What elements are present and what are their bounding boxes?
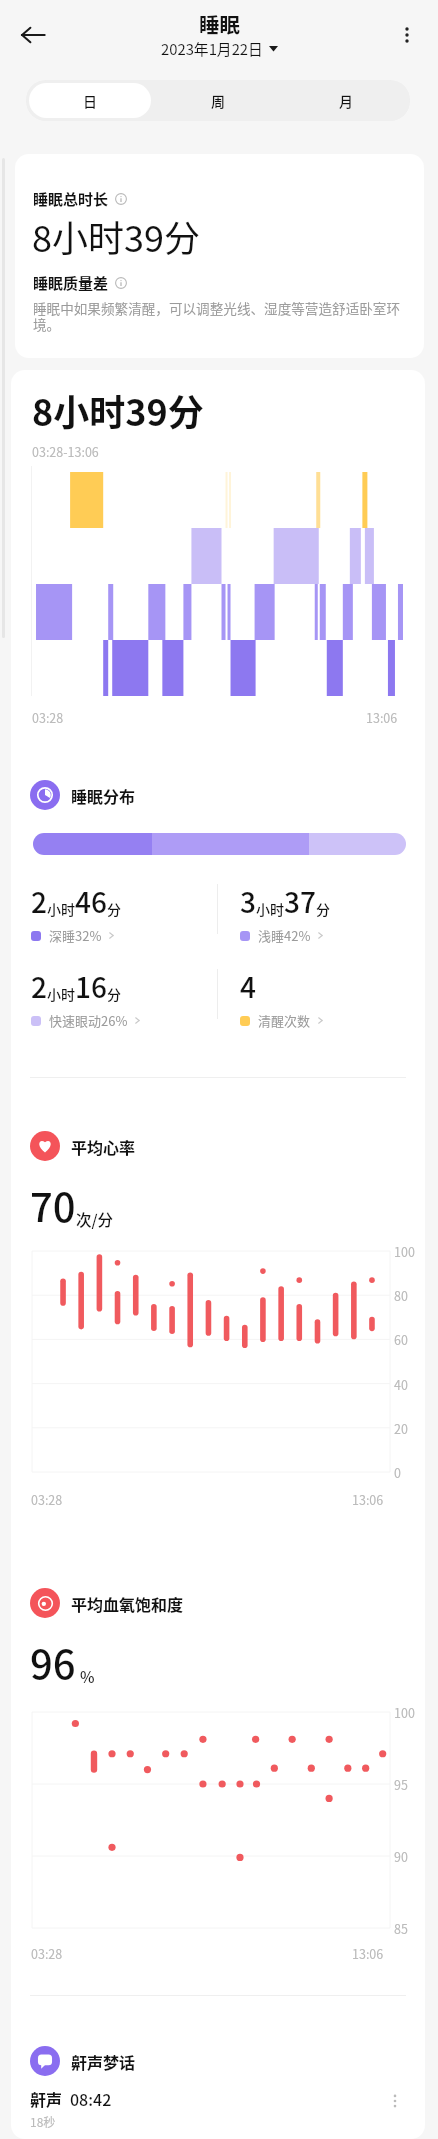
staticText: 20 [394, 1419, 408, 1437]
staticText: 8小时39分 [32, 210, 200, 262]
staticText: 80 [394, 1286, 408, 1304]
button[interactable]: 4 [240, 966, 325, 1030]
staticText: 13:06 [366, 708, 398, 726]
staticText: 小时 [47, 899, 75, 919]
staticText: 60 [394, 1330, 408, 1348]
button[interactable]: 2 [31, 966, 142, 1030]
staticText: 4 [240, 966, 256, 1007]
button[interactable]: 平均心率 [30, 1131, 136, 1161]
button[interactable]: 睡眠分布 [30, 780, 136, 810]
staticText: 37 [284, 881, 316, 922]
staticText: 分 [107, 899, 121, 919]
staticText: 16 [75, 966, 107, 1007]
staticText: 18秒 [30, 2113, 56, 2130]
staticText: 3 [240, 881, 256, 922]
staticText: 03:28 [32, 708, 64, 726]
staticText: 03:28 [31, 1490, 63, 1508]
staticText: 96 [30, 1633, 76, 1691]
staticText: 95 [394, 1775, 408, 1793]
staticText: 深睡32% [49, 926, 102, 945]
staticText: 周 [211, 91, 225, 111]
staticText: 平均血氧饱和度 [71, 1592, 184, 1615]
button[interactable]: More options [386, 14, 428, 56]
staticText: 70 [30, 1176, 76, 1234]
staticText: 90 [394, 1847, 408, 1865]
staticText: 快速眼动26% [49, 1011, 128, 1030]
staticText: % [80, 1665, 95, 1687]
staticText: 月 [339, 91, 353, 111]
staticText: 日 [83, 91, 97, 111]
staticText: 8小时39分 [32, 384, 204, 436]
staticText: 浅睡42% [258, 926, 311, 945]
button[interactable]: 鼾声 [11, 2087, 425, 2139]
staticText: 分 [316, 899, 330, 919]
staticText: 100 [394, 1703, 415, 1721]
staticText: 40 [394, 1375, 408, 1393]
staticText: 0 [394, 1463, 401, 1481]
staticText: 小时 [256, 899, 284, 919]
staticText: 睡眠分布 [71, 784, 136, 807]
staticText: 100 [394, 1242, 415, 1260]
staticText: 睡眠 [199, 9, 240, 39]
button[interactable]: 3 [240, 881, 330, 945]
staticText: 46 [75, 881, 107, 922]
staticText: 08:42 [70, 2087, 112, 2110]
staticText: 鼾声 [30, 2087, 63, 2110]
staticText: 85 [394, 1919, 408, 1937]
button[interactable]: 鼾声梦话 [30, 2046, 136, 2076]
staticText: 分 [107, 984, 121, 1004]
staticText: 13:06 [352, 1944, 384, 1962]
staticText: 03:28-13:06 [32, 442, 99, 460]
staticText: 2023年1月22日 [161, 38, 263, 59]
button[interactable]: 周 [157, 83, 279, 118]
staticText: 睡眠中如果频繁清醒，可以调整光线、湿度等营造舒适卧室环境。 [33, 298, 405, 334]
button[interactable]: Back [10, 12, 56, 58]
staticText: 鼾声梦话 [71, 2050, 136, 2073]
button[interactable]: 平均血氧饱和度 [30, 1588, 184, 1618]
staticText: 03:28 [31, 1944, 63, 1962]
staticText: 小时 [47, 984, 75, 1004]
staticText: 2 [31, 881, 47, 922]
button[interactable]: 月 [285, 83, 407, 118]
staticText: 睡眠质量差 [33, 272, 109, 294]
button[interactable]: 2 [31, 881, 121, 945]
staticText: 次/分 [76, 1208, 114, 1230]
button[interactable]: 日 [29, 83, 151, 118]
staticText: 2 [31, 966, 47, 1007]
button[interactable]: 2023年1月22日 [161, 38, 278, 59]
staticText: 平均心率 [71, 1135, 136, 1158]
staticText: 清醒次数 [258, 1011, 311, 1030]
staticText: 睡眠总时长 [33, 188, 109, 210]
staticText: 13:06 [352, 1490, 384, 1508]
